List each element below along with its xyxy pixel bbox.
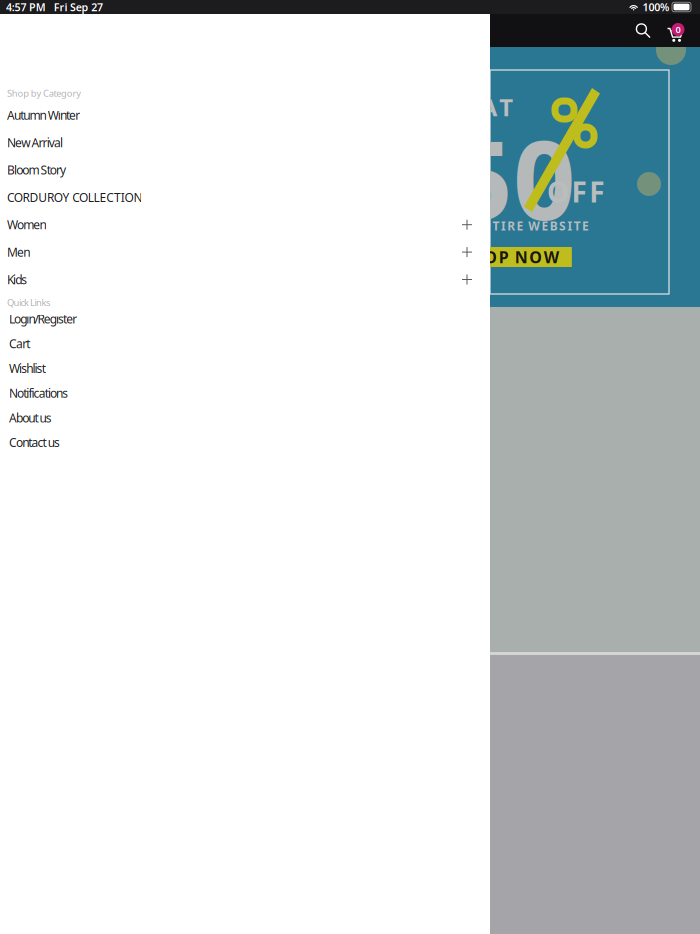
- staticText: Women: [7, 217, 46, 233]
- staticText: W: [544, 246, 559, 268]
- staticText: I: [567, 218, 572, 234]
- staticText: F: [589, 173, 604, 210]
- staticText: Shop by Category: [7, 87, 81, 99]
- staticText: Cart: [9, 336, 30, 352]
- button[interactable]: Contact us: [0, 430, 490, 455]
- staticText: Quick Links: [7, 296, 50, 309]
- staticText: 50: [450, 105, 576, 250]
- button[interactable]: Wishlist: [0, 356, 490, 381]
- staticText: T: [493, 218, 500, 234]
- staticText: Login/Register: [9, 311, 77, 327]
- staticText: W: [528, 218, 540, 234]
- staticText: O: [484, 246, 497, 268]
- staticText: Fri Sep 27: [54, 0, 103, 14]
- staticText: H: [471, 246, 483, 268]
- button[interactable]: Login/Register: [0, 307, 490, 331]
- button[interactable]: Men: [0, 238, 490, 266]
- staticText: P: [499, 246, 509, 268]
- staticText: 0: [675, 23, 680, 36]
- staticText: S: [460, 246, 469, 268]
- button[interactable]: Bloom Story: [0, 156, 490, 184]
- staticText: CORDUROY COLLECTION: [7, 189, 142, 205]
- staticText: About us: [9, 410, 52, 426]
- button[interactable]: Kids: [0, 266, 490, 293]
- staticText: A: [481, 91, 498, 123]
- button[interactable]: CORDUROY COLLECTION: [0, 184, 490, 211]
- button[interactable]: S: [447, 247, 572, 267]
- staticText: Men: [7, 244, 30, 260]
- button[interactable]: Cart: [0, 331, 490, 356]
- staticText: N: [481, 218, 491, 234]
- staticText: New Arrival: [7, 134, 63, 150]
- staticText: R: [507, 218, 515, 234]
- staticText: T: [499, 91, 513, 123]
- button[interactable]: Autumn Winter: [0, 101, 490, 129]
- staticText: O: [547, 173, 569, 210]
- staticText: E: [516, 218, 523, 234]
- staticText: Bloom Story: [7, 162, 66, 178]
- staticText: Kids: [7, 271, 27, 287]
- staticText: E: [582, 218, 589, 234]
- staticText: O: [529, 246, 542, 268]
- button[interactable]: About us: [0, 405, 490, 430]
- staticText: Wishlist: [9, 360, 46, 376]
- staticText: I: [501, 218, 506, 234]
- button[interactable]: New Arrival: [0, 129, 490, 156]
- staticText: Autumn Winter: [7, 107, 80, 123]
- staticText: Notifications: [9, 385, 68, 401]
- staticText: E: [541, 218, 548, 234]
- staticText: B: [550, 218, 558, 234]
- staticText: S: [559, 218, 566, 234]
- staticText: T: [574, 218, 581, 234]
- button[interactable]: Women: [0, 211, 490, 238]
- staticText: 100%: [643, 0, 669, 14]
- button[interactable]: Notifications: [0, 381, 490, 405]
- staticText: N: [515, 246, 528, 268]
- staticText: Contact us: [9, 434, 60, 450]
- staticText: F: [572, 173, 587, 210]
- button[interactable]: Search: [631, 18, 655, 42]
- button[interactable]: Cart: [664, 18, 690, 42]
- staticText: 4:57 PM: [6, 0, 46, 14]
